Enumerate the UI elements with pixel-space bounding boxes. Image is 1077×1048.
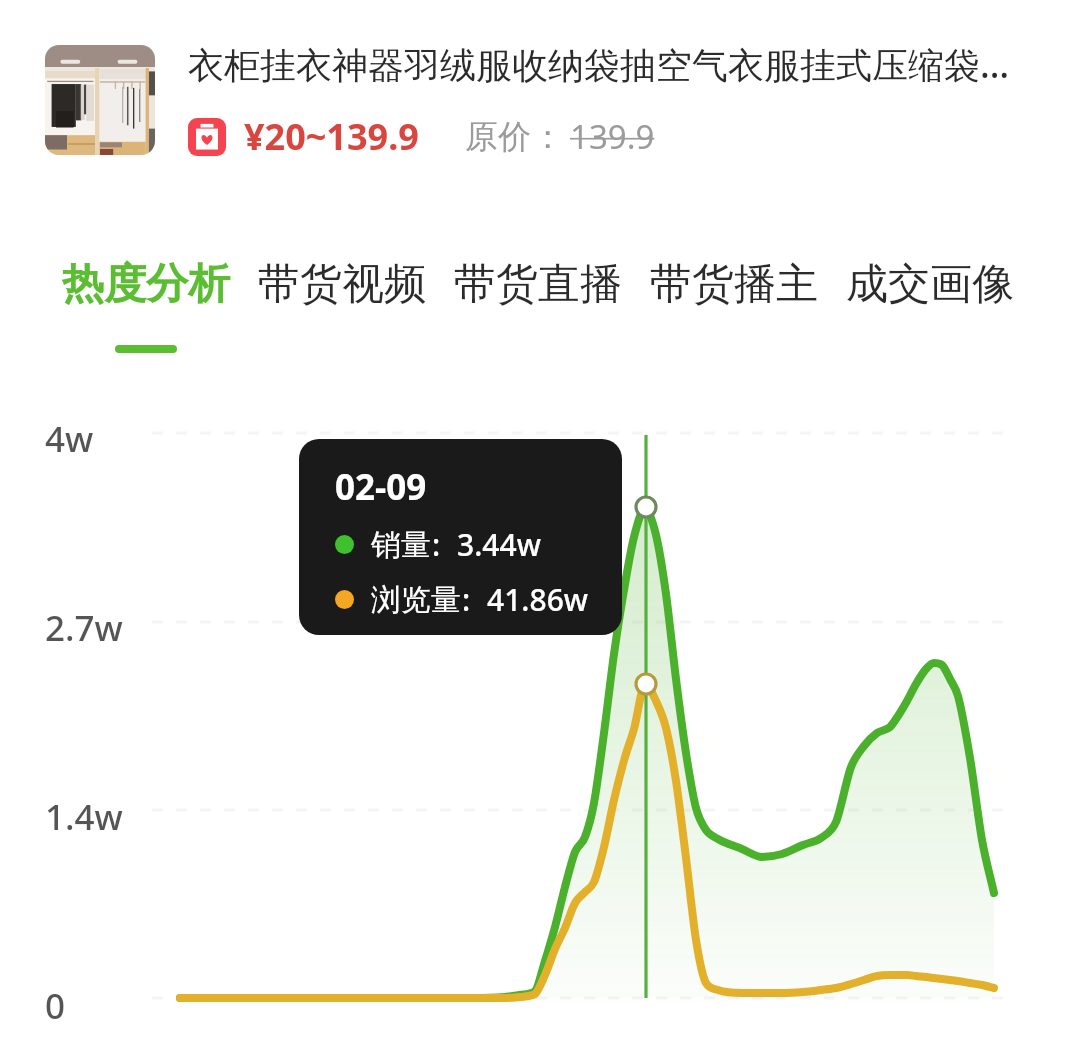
staticText: 0 — [45, 982, 66, 1030]
button[interactable]: Product image — [45, 45, 155, 155]
button[interactable]: 带货播主 — [650, 258, 818, 345]
staticText: 带货视频 — [258, 258, 426, 311]
staticText: 带货播主 — [650, 258, 818, 311]
button[interactable]: 衣柜挂衣神器羽绒服收纳袋抽空气衣服挂式压缩袋… — [188, 40, 1077, 89]
staticText: 4w — [45, 415, 94, 463]
staticText: 139.9 — [570, 114, 655, 159]
staticText: 成交画像 — [846, 258, 1014, 311]
staticText: 带货直播 — [454, 258, 622, 311]
staticText: 2.7w — [45, 604, 123, 652]
staticText: ¥20~139.9 — [244, 112, 419, 161]
staticText: 1.4w — [45, 793, 123, 841]
staticText: 热度分析 — [62, 258, 230, 311]
staticText: 3.44w — [457, 524, 541, 565]
staticText: 销量 — [371, 526, 431, 564]
staticText: 浏览量 — [371, 581, 461, 619]
button[interactable]: 带货视频 — [258, 258, 426, 345]
staticText: : — [432, 524, 441, 565]
button[interactable]: 成交画像 — [846, 258, 1014, 345]
staticText: : — [462, 579, 471, 620]
staticText: 41.86w — [487, 579, 589, 620]
button[interactable]: 热度分析 — [62, 258, 230, 353]
staticText: 衣柜挂衣神器羽绒服收纳袋抽空气衣服挂式压缩袋… — [188, 40, 1010, 89]
button[interactable]: 带货直播 — [454, 258, 622, 345]
staticText: 原价： — [465, 116, 564, 158]
staticText: 02-09 — [335, 463, 427, 511]
